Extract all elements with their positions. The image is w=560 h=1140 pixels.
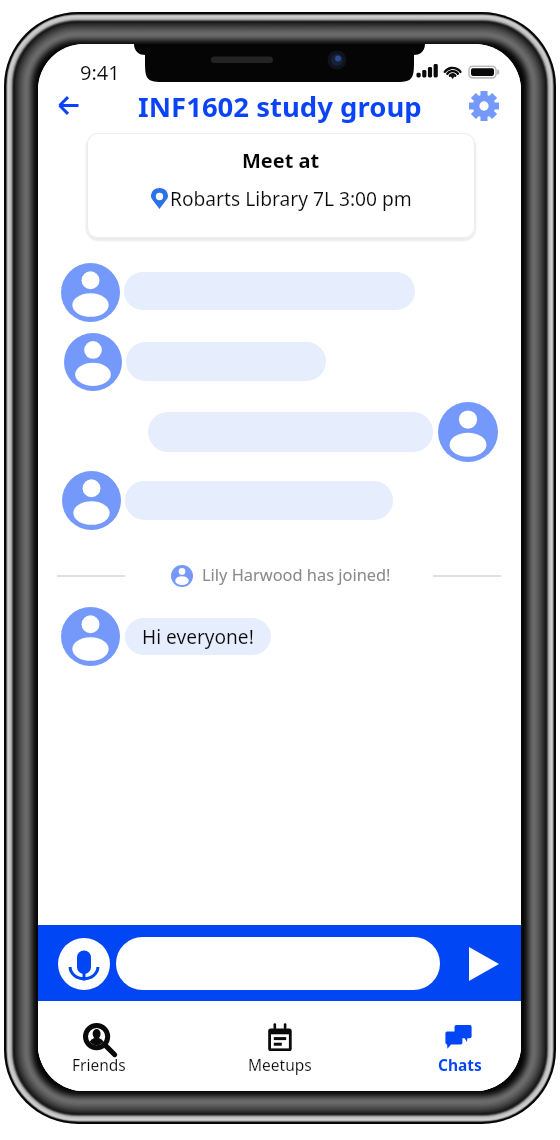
staticText: Meet at	[242, 147, 320, 174]
button[interactable]	[148, 412, 433, 452]
button[interactable]	[125, 481, 393, 520]
staticText: Hi everyone!	[142, 624, 254, 650]
button[interactable]: Back	[46, 83, 90, 127]
staticText: Chats	[438, 1054, 482, 1075]
staticText: Lily Harwood has joined!	[202, 563, 391, 585]
button[interactable]: Meet at	[87, 133, 475, 238]
button[interactable]: Meetups	[219, 1006, 341, 1091]
button[interactable]: Message input	[116, 937, 440, 990]
staticText: Meetups	[248, 1054, 312, 1075]
button[interactable]: Friends	[38, 1006, 160, 1091]
button[interactable]: Hi everyone!	[125, 618, 271, 655]
staticText: Robarts Library 7L 3:00 pm	[170, 185, 412, 211]
staticText: INF1602 study group	[138, 88, 422, 124]
button[interactable]	[126, 342, 326, 381]
staticText: 9:41	[80, 59, 120, 86]
button[interactable]	[124, 272, 415, 310]
button[interactable]: Record voice message	[58, 938, 110, 990]
button[interactable]: Send	[461, 937, 507, 991]
button[interactable]: Chats	[399, 1006, 521, 1091]
button[interactable]: Settings	[462, 84, 506, 128]
staticText: Friends	[72, 1054, 126, 1075]
